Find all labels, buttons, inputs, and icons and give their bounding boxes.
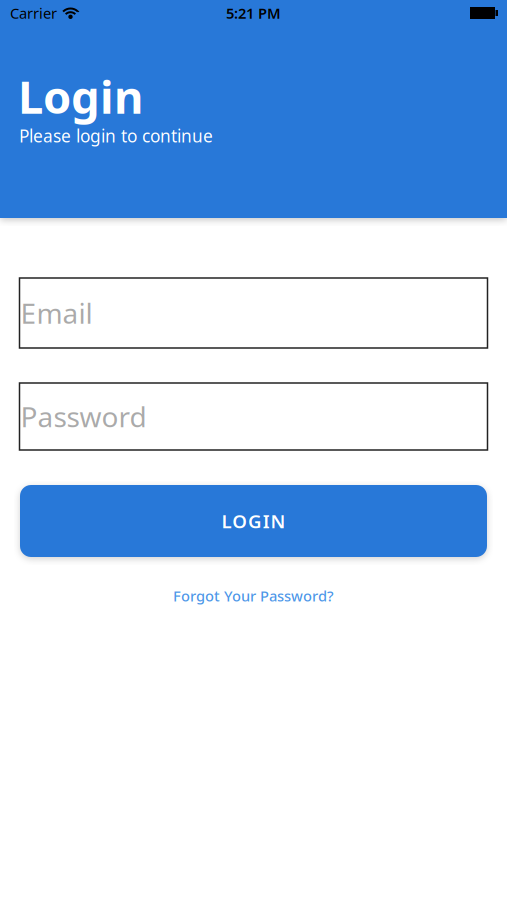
staticText: Carrier	[10, 3, 57, 23]
button[interactable]: Email	[19, 278, 487, 348]
button[interactable]: Forgot Your Password?	[173, 586, 334, 605]
staticText: Email	[20, 294, 92, 332]
staticText: 5:21 PM	[226, 3, 281, 23]
staticText: LOGIN	[221, 509, 286, 533]
staticText: Forgot Your Password?	[173, 586, 334, 605]
staticText: Password	[20, 398, 146, 435]
button[interactable]: Password	[19, 383, 487, 450]
staticText: Please login to continue	[19, 124, 213, 147]
button[interactable]: LOGIN	[20, 485, 487, 557]
staticText: Login	[18, 66, 143, 126]
